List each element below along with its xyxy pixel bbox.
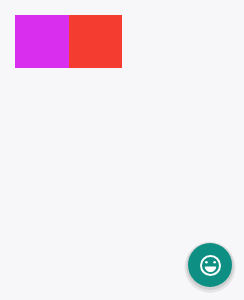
- button[interactable]: Add reaction: [188, 243, 232, 287]
